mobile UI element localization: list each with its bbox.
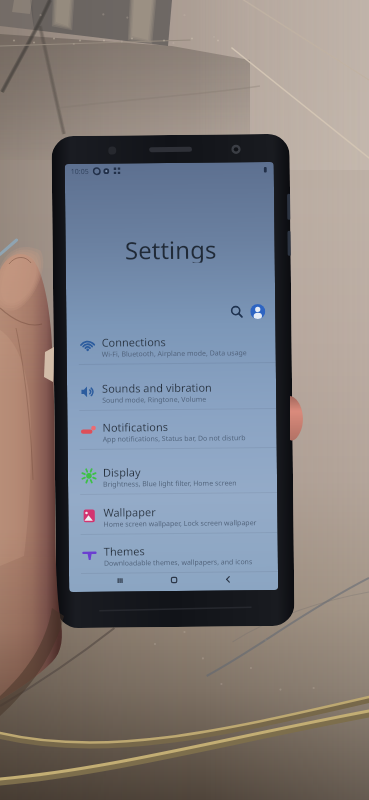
staticText: Downloadable themes, wallpapers, and ico… [104, 557, 253, 569]
button[interactable]: Notifications [67, 410, 277, 450]
staticText: Display [103, 464, 141, 480]
staticText: Wi-Fi, Bluetooth, Airplane mode, Data us… [102, 348, 248, 360]
staticText: Settings [124, 232, 217, 263]
button[interactable]: Account [250, 304, 265, 319]
button[interactable]: Home [168, 574, 180, 586]
staticText: Brightness, Blue light filter, Home scre… [103, 478, 237, 490]
staticText: Sounds and vibration [102, 380, 212, 396]
button[interactable]: Search [229, 304, 244, 319]
staticText: Wallpaper [103, 504, 156, 520]
staticText: App notifications, Status bar, Do not di… [103, 433, 246, 445]
button[interactable]: Recents [114, 574, 126, 587]
staticText: 10:05 [71, 167, 89, 177]
button[interactable]: Wallpaper [68, 495, 278, 535]
staticText: Connections [101, 334, 167, 350]
staticText: Themes [104, 543, 145, 559]
button[interactable]: Connections [66, 325, 276, 365]
button[interactable]: Sounds and vibration [67, 371, 276, 411]
button[interactable]: Themes [69, 534, 278, 574]
staticText: Notifications [102, 419, 169, 435]
button[interactable]: Back [222, 573, 234, 585]
staticText: Sound mode, Ringtone, Volume [102, 395, 207, 406]
button[interactable]: Display [68, 455, 277, 495]
staticText: Home screen wallpaper, Lock screen wallp… [103, 518, 256, 530]
